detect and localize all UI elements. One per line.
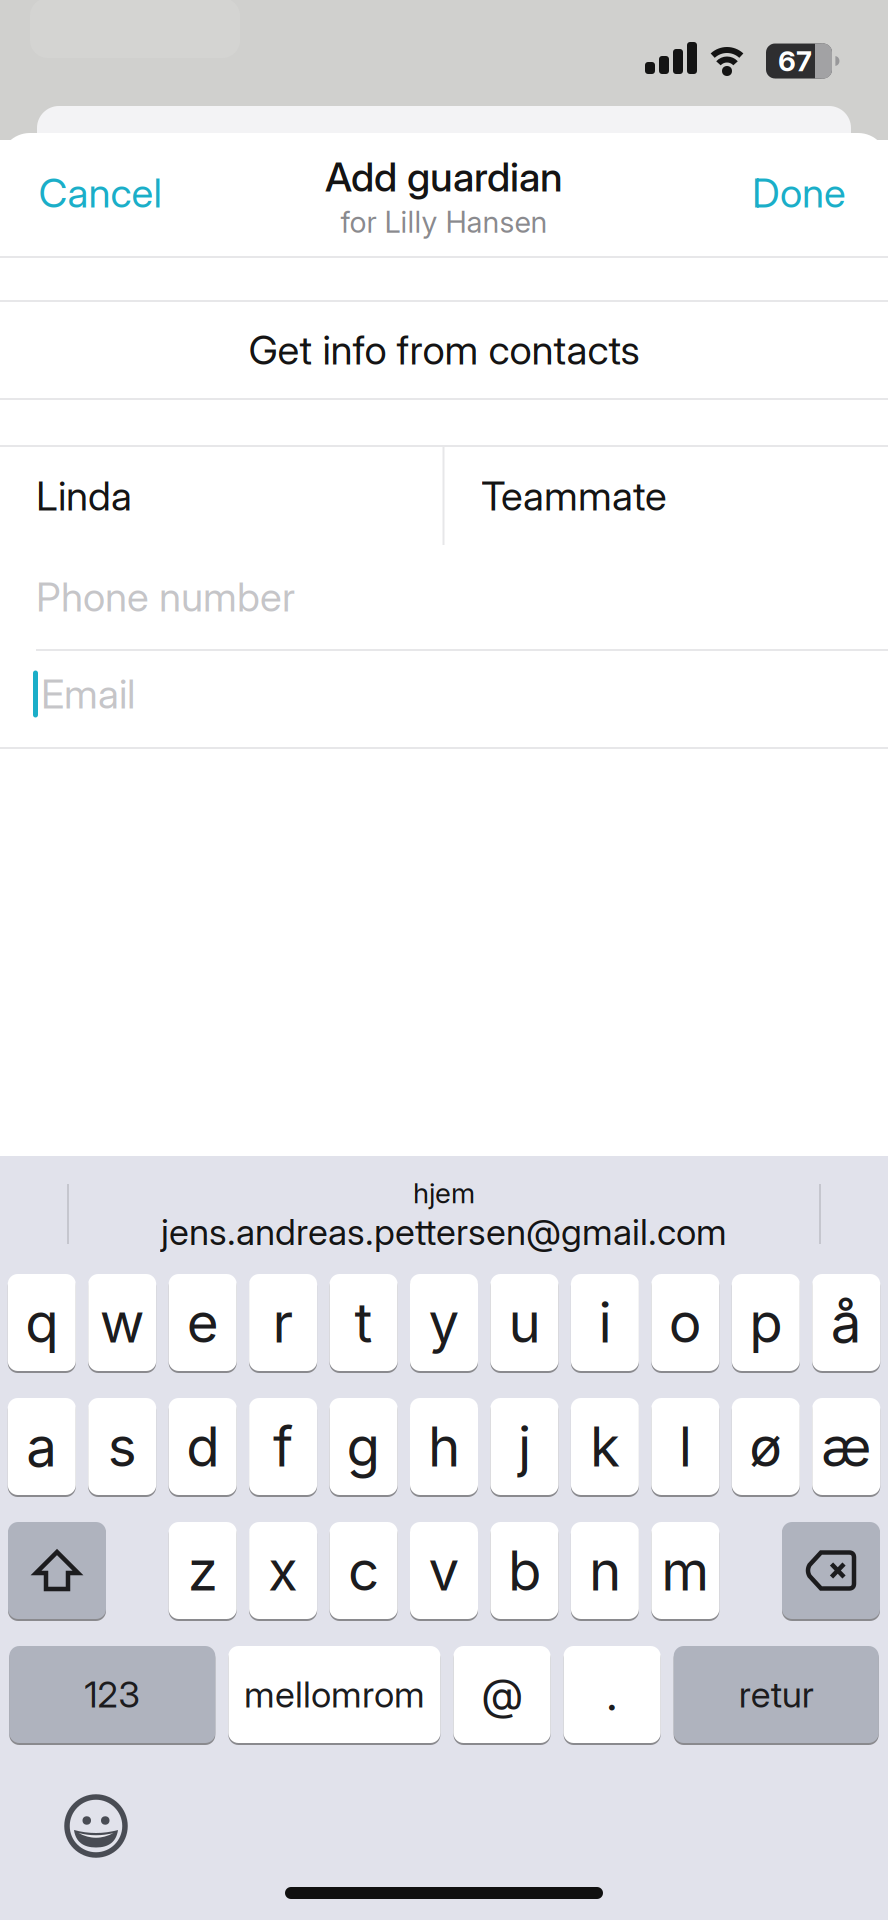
button[interactable]: æ <box>812 1398 880 1495</box>
button[interactable]: ø <box>732 1398 800 1495</box>
button[interactable]: g <box>330 1398 398 1495</box>
staticText: jens.andreas.pettersen@gmail.com <box>161 1211 727 1253</box>
staticText: Phone number <box>36 573 295 621</box>
staticText: a <box>26 1414 57 1479</box>
button[interactable]: f <box>249 1398 317 1495</box>
button[interactable]: retur <box>674 1646 879 1743</box>
button[interactable]: c <box>329 1522 397 1619</box>
staticText: Email <box>41 670 135 718</box>
staticText: æ <box>821 1414 871 1479</box>
button[interactable]: Email <box>0 647 888 741</box>
button[interactable]: Shift <box>8 1522 106 1619</box>
staticText: e <box>187 1290 219 1355</box>
button[interactable]: j <box>490 1398 558 1495</box>
button[interactable]: Get info from contacts <box>0 302 888 398</box>
staticText: b <box>508 1538 541 1603</box>
staticText: @ <box>481 1668 523 1720</box>
button[interactable]: t <box>330 1274 398 1371</box>
staticText: retur <box>739 1673 814 1716</box>
staticText: . <box>606 1668 619 1720</box>
button[interactable]: y <box>410 1274 478 1371</box>
staticText: p <box>749 1290 782 1355</box>
staticText: c <box>348 1538 379 1603</box>
button[interactable]: Linda <box>0 447 443 544</box>
staticText: t <box>355 1290 373 1355</box>
staticText: y <box>428 1290 459 1355</box>
button[interactable]: q <box>8 1274 76 1371</box>
staticText: z <box>188 1538 218 1603</box>
staticText: Add guardian <box>325 153 563 201</box>
button[interactable]: Phone number <box>0 547 888 647</box>
button[interactable]: l <box>651 1398 719 1495</box>
button[interactable]: v <box>410 1522 478 1619</box>
staticText: Done <box>752 169 846 217</box>
staticText: ø <box>749 1414 782 1479</box>
staticText: mellomrom <box>244 1673 425 1716</box>
button[interactable]: x <box>249 1522 317 1619</box>
staticText: q <box>25 1290 58 1355</box>
button[interactable]: m <box>651 1522 719 1619</box>
button[interactable]: n <box>571 1522 639 1619</box>
staticText: i <box>598 1290 611 1355</box>
button[interactable]: s <box>88 1398 156 1495</box>
button[interactable]: p <box>732 1274 800 1371</box>
staticText: f <box>273 1414 293 1479</box>
staticText: hjem <box>413 1176 475 1209</box>
button[interactable]: u <box>490 1274 558 1371</box>
staticText: Cancel <box>38 169 161 217</box>
button[interactable]: z <box>169 1522 237 1619</box>
button[interactable]: jens.andreas.pettersen@gmail.com <box>161 1211 727 1253</box>
button[interactable]: . <box>564 1646 661 1743</box>
button[interactable]: Cancel <box>38 169 161 217</box>
button[interactable]: hjem <box>413 1176 475 1209</box>
staticText: x <box>268 1538 298 1603</box>
staticText: h <box>428 1414 460 1479</box>
button[interactable]: h <box>410 1398 478 1495</box>
button[interactable]: mellomrom <box>228 1646 440 1743</box>
button[interactable]: e <box>169 1274 237 1371</box>
button[interactable]: Emoji <box>64 1794 128 1858</box>
staticText: Teammate <box>481 472 667 520</box>
button[interactable]: Teammate <box>444 447 888 544</box>
staticText: 67 <box>778 44 812 77</box>
staticText: Get info from contacts <box>248 326 639 374</box>
staticText: r <box>273 1290 294 1355</box>
staticText: g <box>347 1414 381 1479</box>
staticText: Linda <box>36 472 132 520</box>
staticText: j <box>518 1414 531 1479</box>
staticText: k <box>590 1414 620 1479</box>
staticText: n <box>589 1538 621 1603</box>
staticText: s <box>108 1414 137 1479</box>
button[interactable]: i <box>571 1274 639 1371</box>
button[interactable]: @ <box>453 1646 550 1743</box>
staticText: m <box>661 1538 709 1603</box>
staticText: l <box>679 1414 692 1479</box>
button[interactable]: w <box>88 1274 156 1371</box>
button[interactable]: k <box>571 1398 639 1495</box>
staticText: u <box>508 1290 540 1355</box>
button[interactable]: b <box>490 1522 558 1619</box>
button[interactable]: Delete <box>782 1522 880 1619</box>
staticText: 123 <box>84 1673 140 1716</box>
button[interactable]: d <box>169 1398 237 1495</box>
button[interactable]: r <box>249 1274 317 1371</box>
button[interactable]: a <box>8 1398 76 1495</box>
staticText: d <box>186 1414 219 1479</box>
staticText: å <box>831 1290 862 1355</box>
staticText: w <box>100 1290 145 1355</box>
button[interactable]: 123 <box>9 1646 215 1743</box>
button[interactable]: o <box>651 1274 719 1371</box>
staticText: v <box>428 1538 459 1603</box>
button[interactable]: Done <box>752 169 846 217</box>
staticText: o <box>669 1290 702 1355</box>
button[interactable]: å <box>812 1274 880 1371</box>
staticText: for Lilly Hansen <box>340 205 547 239</box>
